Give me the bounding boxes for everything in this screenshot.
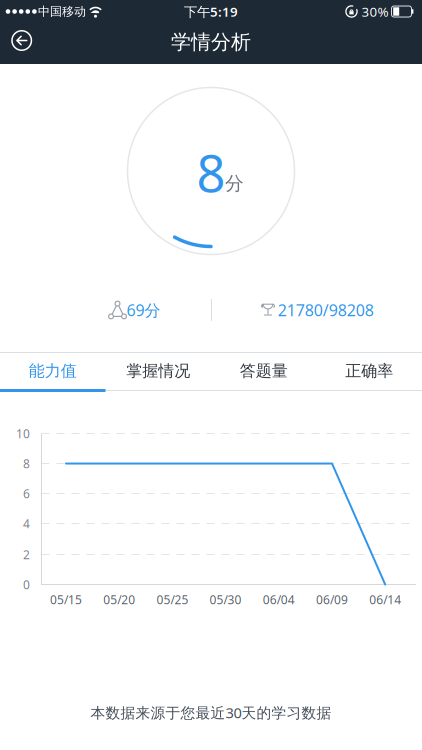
staticText: 2 — [23, 546, 30, 562]
staticText: 21780/98208 — [278, 299, 374, 321]
staticText: 8 — [196, 139, 225, 206]
staticText: 05/25 — [156, 591, 188, 607]
staticText: 中国移动 — [38, 4, 86, 19]
staticText: 8 — [23, 455, 30, 471]
staticText: 本数据来源于您最近30天的学习数据 — [90, 703, 331, 722]
staticText: 10 — [16, 425, 30, 441]
staticText: 05/20 — [103, 591, 135, 607]
button[interactable] — [7, 25, 37, 55]
staticText: 05/30 — [210, 591, 242, 607]
staticText: 05/15 — [50, 591, 82, 607]
staticText: 学情分析 — [171, 30, 251, 54]
staticText: 能力值 — [29, 361, 77, 381]
staticText: 69分 — [126, 299, 160, 321]
button[interactable]: 掌握情况 — [105, 352, 211, 389]
staticText: 6 — [23, 485, 30, 501]
staticText: 06/04 — [263, 591, 295, 607]
button[interactable]: 正确率 — [316, 352, 422, 389]
staticText: 4 — [23, 515, 30, 531]
staticText: 0 — [23, 576, 30, 592]
staticText: 下午5:19 — [184, 3, 238, 20]
staticText: 分 — [225, 172, 244, 195]
staticText: 30% — [361, 3, 388, 20]
staticText: 答题量 — [240, 361, 288, 381]
staticText: 06/09 — [316, 591, 348, 607]
staticText: 正确率 — [345, 361, 393, 381]
button[interactable]: 答题量 — [211, 352, 316, 389]
button[interactable]: 能力值 — [0, 352, 105, 389]
staticText: 掌握情况 — [126, 361, 190, 381]
staticText: 06/14 — [369, 591, 401, 607]
